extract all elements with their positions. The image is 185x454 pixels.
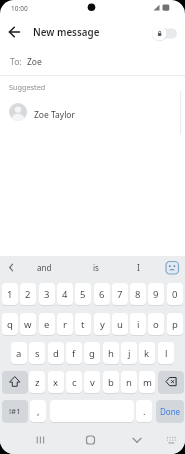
staticText: I	[137, 262, 140, 273]
staticText: 0	[172, 288, 178, 301]
staticText: and	[37, 262, 52, 273]
staticText: o	[153, 318, 159, 331]
button[interactable]	[78, 428, 103, 454]
staticText: h	[108, 347, 114, 360]
button[interactable]: Done	[156, 400, 184, 422]
staticText: Done	[160, 406, 181, 417]
staticText: p	[172, 318, 178, 331]
button[interactable]: i	[130, 313, 146, 335]
button[interactable]: z	[29, 371, 45, 393]
button[interactable]: 8	[130, 283, 146, 305]
button[interactable]	[162, 257, 183, 278]
staticText: f	[72, 347, 76, 360]
staticText: 3	[44, 288, 50, 301]
staticText: Zoe	[27, 56, 42, 68]
button[interactable]: I	[122, 257, 154, 278]
staticText: 8	[135, 288, 141, 301]
button[interactable]: h	[103, 342, 119, 364]
staticText: 9	[153, 288, 159, 301]
button[interactable]: r	[57, 313, 73, 335]
staticText: g	[89, 347, 95, 360]
button[interactable]: 2	[20, 283, 36, 305]
button[interactable]: w	[20, 313, 36, 335]
button[interactable]: and	[26, 257, 62, 278]
button[interactable]	[0, 48, 185, 75]
staticText: 10:00	[11, 4, 28, 13]
button[interactable]: is	[78, 257, 114, 278]
staticText: y	[100, 318, 105, 331]
button[interactable]: ,	[30, 400, 46, 422]
button[interactable]: e	[39, 313, 55, 335]
button[interactable]: 7	[112, 283, 128, 305]
button[interactable]: x	[48, 371, 64, 393]
button[interactable]: .	[136, 400, 152, 422]
button[interactable]: 3	[39, 283, 55, 305]
staticText: New message	[33, 26, 100, 39]
button[interactable]: q	[2, 313, 18, 335]
button[interactable]: n	[121, 371, 137, 393]
button[interactable]	[2, 371, 28, 393]
button[interactable]: c	[66, 371, 82, 393]
staticText: k	[144, 347, 150, 360]
button[interactable]: m	[139, 371, 155, 393]
staticText: u	[117, 318, 123, 331]
staticText: q	[7, 318, 13, 331]
button[interactable]: f	[66, 342, 82, 364]
staticText: Suggested	[9, 82, 46, 92]
staticText: b	[108, 376, 114, 389]
staticText: e	[44, 318, 50, 331]
staticText: 7	[117, 288, 123, 301]
button[interactable]: v	[84, 371, 100, 393]
staticText: 2	[25, 288, 31, 301]
staticText: 5	[80, 288, 86, 301]
staticText: s	[35, 347, 40, 360]
staticText: w	[24, 318, 32, 331]
staticText: a	[16, 347, 22, 360]
staticText: ,	[37, 405, 40, 418]
button[interactable]: s	[29, 342, 45, 364]
staticText: c	[72, 376, 77, 389]
button[interactable]: b	[103, 371, 119, 393]
button[interactable]: 9	[148, 283, 164, 305]
button[interactable]: g	[84, 342, 100, 364]
button[interactable]: t	[75, 313, 91, 335]
button[interactable]: p	[167, 313, 183, 335]
button[interactable]: 4	[57, 283, 73, 305]
staticText: !#1	[9, 406, 21, 417]
staticText: l	[165, 347, 168, 360]
staticText: v	[90, 376, 95, 389]
button[interactable]: o	[148, 313, 164, 335]
staticText: 1	[7, 288, 13, 301]
staticText: n	[126, 376, 132, 389]
button[interactable]	[28, 428, 53, 454]
button[interactable]: Zoe Taylor	[0, 100, 182, 130]
staticText: z	[35, 376, 40, 389]
staticText: r	[63, 318, 67, 331]
button[interactable]: j	[121, 342, 137, 364]
button[interactable]: k	[139, 342, 155, 364]
button[interactable]: l	[158, 342, 174, 364]
button[interactable]: 1	[2, 283, 18, 305]
button[interactable]: 5	[75, 283, 91, 305]
button[interactable]	[158, 371, 184, 393]
button[interactable]: !#1	[2, 400, 28, 422]
staticText: x	[53, 376, 59, 389]
staticText: i	[137, 318, 140, 331]
button[interactable]	[4, 24, 30, 41]
button[interactable]: u	[112, 313, 128, 335]
staticText: m	[143, 376, 152, 389]
button[interactable]	[2, 257, 22, 278]
button[interactable]: d	[48, 342, 64, 364]
staticText: 6	[99, 288, 105, 301]
staticText: Zoe Taylor	[34, 109, 76, 121]
staticText: To:	[10, 56, 22, 68]
staticText: j	[128, 347, 131, 360]
staticText: .	[143, 405, 146, 418]
button[interactable]: 0	[167, 283, 183, 305]
button[interactable]	[126, 428, 151, 454]
button[interactable]	[150, 24, 180, 43]
button[interactable]: 6	[94, 283, 110, 305]
button[interactable]: y	[94, 313, 110, 335]
button[interactable]: a	[11, 342, 27, 364]
